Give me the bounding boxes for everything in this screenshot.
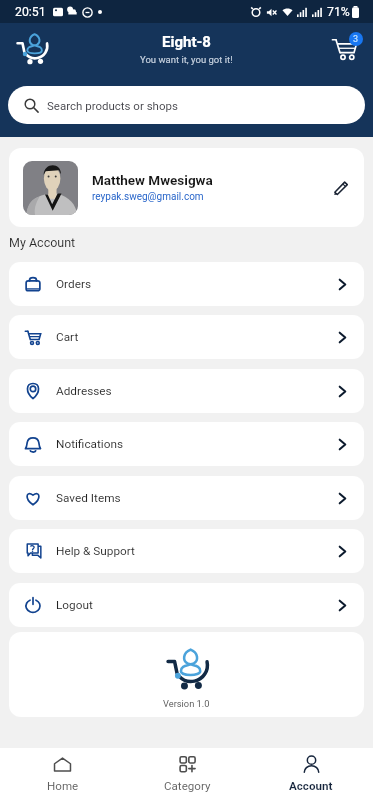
button[interactable]: Cart, 3 items xyxy=(330,31,363,64)
staticText: Search products or shops xyxy=(47,99,178,112)
staticText: 20:51 xyxy=(15,5,46,19)
staticText: You want it, you got it! xyxy=(140,54,233,65)
staticText: Notifications xyxy=(56,437,124,451)
staticText: Help & Support xyxy=(56,544,135,558)
staticText: My Account xyxy=(9,235,76,250)
staticText: Matthew Mwesigwa xyxy=(92,172,213,188)
staticText: 71% xyxy=(327,5,350,19)
button[interactable]: Notifications xyxy=(9,422,364,466)
staticText: Home xyxy=(47,779,79,793)
button[interactable]: Home xyxy=(0,748,125,800)
button[interactable]: Help & Support xyxy=(9,529,364,573)
button[interactable]: Addresses xyxy=(9,369,364,413)
staticText: 3 xyxy=(353,34,359,45)
staticText: Saved Items xyxy=(56,491,121,505)
button[interactable]: Cart xyxy=(9,315,364,359)
staticText: reypak.sweg@gmail.com xyxy=(92,191,204,203)
button[interactable]: Category xyxy=(125,748,249,800)
staticText: Cart xyxy=(56,330,79,344)
button[interactable]: Logout xyxy=(9,583,364,627)
staticText: Eight-8 xyxy=(162,33,211,51)
button[interactable]: Account xyxy=(249,748,373,800)
staticText: Account xyxy=(289,779,333,793)
button[interactable]: Saved Items xyxy=(9,476,364,520)
staticText: Orders xyxy=(56,277,91,291)
button[interactable]: Eight-8 logo xyxy=(16,33,47,64)
staticText: Version 1.0 xyxy=(163,698,210,709)
button[interactable]: Search products or shops xyxy=(8,86,365,124)
staticText: Logout xyxy=(56,598,93,612)
button[interactable]: Orders xyxy=(9,262,364,306)
button[interactable]: Edit profile xyxy=(327,174,355,202)
staticText: Addresses xyxy=(56,384,112,398)
staticText: Category xyxy=(164,779,211,793)
button[interactable]: Matthew Mwesigwa xyxy=(9,148,364,227)
